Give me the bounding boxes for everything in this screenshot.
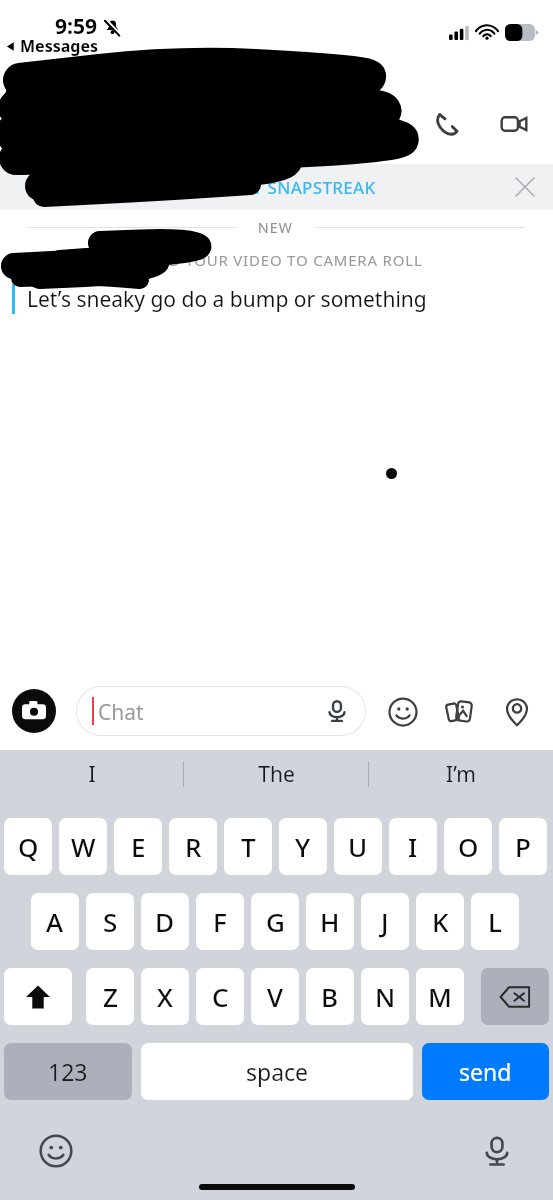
button[interactable]: Video call: [492, 102, 536, 146]
button[interactable]: Shift: [4, 968, 72, 1025]
staticText: 4-DAY SNAPSTREAK: [214, 176, 376, 199]
staticText: J: [381, 904, 389, 939]
staticText: The: [258, 760, 295, 789]
staticText: Messages: [20, 35, 98, 57]
staticText: 9:59: [55, 12, 97, 41]
button[interactable]: send: [422, 1043, 549, 1100]
staticText: Z: [103, 979, 118, 1014]
button[interactable]: C: [196, 968, 244, 1025]
button[interactable]: Photos: [437, 689, 483, 735]
button[interactable]: Emoji: [32, 1127, 80, 1175]
button[interactable]: A: [31, 893, 79, 950]
button[interactable]: L: [471, 893, 519, 950]
button[interactable]: space: [141, 1043, 413, 1100]
staticText: I: [88, 760, 96, 789]
staticText: Q: [18, 829, 39, 864]
button[interactable]: F: [196, 893, 244, 950]
button[interactable]: Let’s sneaky go do a bump or something: [0, 276, 553, 322]
staticText: I’m: [446, 760, 476, 789]
staticText: A: [46, 904, 64, 939]
staticText: 123: [48, 1056, 88, 1087]
button[interactable]: I: [389, 818, 437, 875]
button[interactable]: Dismiss: [505, 167, 545, 207]
staticText: L: [488, 904, 502, 939]
staticText: Y: [295, 829, 311, 864]
button[interactable]: 123: [4, 1043, 132, 1100]
button[interactable]: G: [251, 893, 299, 950]
button[interactable]: Chat: [76, 686, 366, 736]
button[interactable]: D: [141, 893, 189, 950]
staticText: C: [212, 979, 229, 1014]
button[interactable]: The: [184, 750, 368, 798]
button[interactable]: Z: [86, 968, 134, 1025]
button[interactable]: B: [306, 968, 354, 1025]
button[interactable]: E: [114, 818, 162, 875]
staticText: S: [103, 904, 118, 939]
button[interactable]: Voice message: [320, 694, 354, 728]
button[interactable]: X: [141, 968, 189, 1025]
staticText: send: [459, 1056, 512, 1087]
staticText: X: [157, 979, 173, 1014]
staticText: N: [375, 979, 396, 1014]
button[interactable]: K: [416, 893, 464, 950]
button[interactable]: Location: [494, 689, 540, 735]
staticText: P: [515, 829, 531, 864]
staticText: W: [71, 829, 96, 864]
staticText: V: [267, 979, 283, 1014]
staticText: K: [432, 904, 449, 939]
button[interactable]: V: [251, 968, 299, 1025]
staticText: O: [458, 829, 479, 864]
button[interactable]: T: [224, 818, 272, 875]
button[interactable]: Camera: [12, 689, 56, 733]
button[interactable]: S: [86, 893, 134, 950]
staticText: G: [266, 904, 285, 939]
button[interactable]: M: [416, 968, 464, 1025]
staticText: NEW: [258, 218, 294, 237]
button[interactable]: H: [306, 893, 354, 950]
staticText: space: [246, 1056, 309, 1087]
staticText: M: [428, 979, 452, 1014]
staticText: U: [348, 829, 368, 864]
staticText: D: [155, 904, 175, 939]
staticText: B: [321, 979, 339, 1014]
button[interactable]: 4-DAY SNAPSTREAK: [0, 164, 553, 210]
staticText: Chat: [98, 698, 144, 727]
staticText: E: [131, 829, 146, 864]
staticText: SAVED YOUR VIDEO TO CAMERA ROLL: [131, 250, 423, 270]
button[interactable]: Y: [279, 818, 327, 875]
button[interactable]: Voice call: [424, 102, 468, 146]
staticText: R: [185, 829, 202, 864]
button[interactable]: W: [59, 818, 107, 875]
button[interactable]: Dictation: [473, 1127, 521, 1175]
button[interactable]: Stickers: [380, 689, 426, 735]
button[interactable]: N: [361, 968, 409, 1025]
staticText: H: [320, 904, 340, 939]
button[interactable]: I: [0, 750, 183, 798]
staticText: F: [213, 904, 227, 939]
button[interactable]: P: [499, 818, 547, 875]
button[interactable]: Backspace: [481, 968, 549, 1025]
staticText: T: [241, 829, 256, 864]
button[interactable]: U: [334, 818, 382, 875]
button[interactable]: I’m: [369, 750, 553, 798]
button[interactable]: O: [444, 818, 492, 875]
button[interactable]: Q: [4, 818, 52, 875]
staticText: Let’s sneaky go do a bump or something: [27, 285, 427, 314]
staticText: I: [408, 829, 418, 864]
button[interactable]: R: [169, 818, 217, 875]
button[interactable]: J: [361, 893, 409, 950]
